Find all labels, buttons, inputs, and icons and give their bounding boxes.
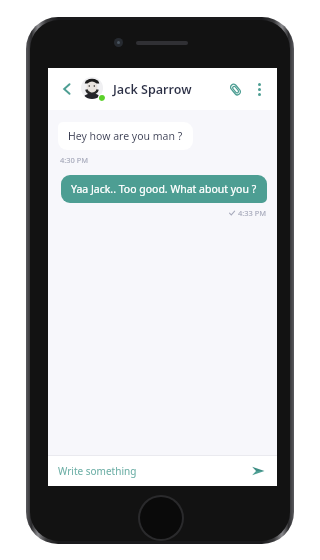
button[interactable]: Contact avatar <box>81 77 105 101</box>
staticText: 4:30 PM <box>60 155 89 165</box>
button[interactable]: Send message <box>247 460 269 482</box>
button[interactable]: Yaa Jack.. Too good. What about you ? <box>61 175 267 203</box>
staticText: Write something <box>58 464 137 478</box>
staticText: 4:33 PM <box>238 208 267 218</box>
staticText: Jack Sparrow <box>113 81 192 98</box>
button[interactable]: Back <box>56 78 78 100</box>
button[interactable]: Hey how are you man ? <box>58 122 193 150</box>
button[interactable]: Attach file <box>223 77 247 101</box>
staticText: Yaa Jack.. Too good. What about you ? <box>71 182 257 196</box>
button[interactable]: More options <box>249 79 269 99</box>
button[interactable]: Write something <box>58 456 247 486</box>
staticText: Hey how are you man ? <box>68 129 183 143</box>
